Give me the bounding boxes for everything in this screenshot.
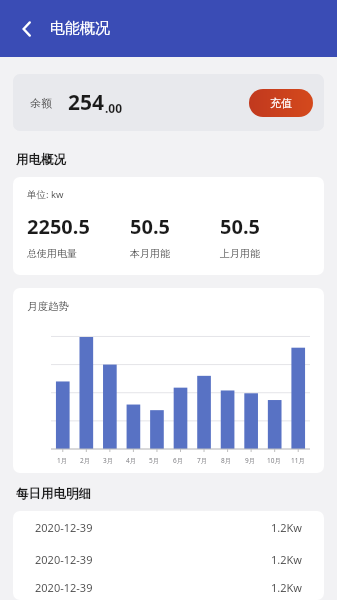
staticText: 11月 [291, 456, 305, 465]
staticText: 上月用能 [220, 247, 260, 260]
staticText: 2020-12-39 [35, 520, 93, 535]
staticText: 6月 [173, 456, 184, 465]
staticText: 充值 [270, 96, 292, 110]
staticText: 50.5 [130, 213, 170, 240]
staticText: 1.2Kw [271, 552, 302, 567]
button[interactable]: 充值 [249, 89, 313, 117]
staticText: 1.2Kw [271, 580, 302, 595]
staticText: 7月 [197, 456, 208, 465]
staticText: 3月 [103, 456, 114, 465]
button[interactable]: 2020-12-39 [13, 543, 324, 575]
staticText: 9月 [245, 456, 256, 465]
staticText: 用电概况 [16, 152, 66, 168]
button[interactable]: 2020-12-39 [13, 575, 324, 600]
staticText: 2250.5 [27, 213, 90, 240]
staticText: 2020-12-39 [35, 580, 93, 595]
staticText: 电能概况 [50, 19, 110, 38]
staticText: .00 [105, 100, 123, 116]
staticText: 2020-12-39 [35, 552, 93, 567]
staticText: 4月 [126, 456, 137, 465]
staticText: 总使用电量 [27, 247, 77, 260]
staticText: 1月 [57, 456, 68, 465]
staticText: 余额 [30, 96, 52, 110]
staticText: 本月用能 [130, 247, 170, 260]
staticText: 每日用电明细 [16, 486, 91, 502]
staticText: 2月 [80, 456, 91, 465]
staticText: 月度趋势 [27, 300, 69, 313]
staticText: 10月 [267, 456, 281, 465]
staticText: 254 [68, 88, 105, 117]
button[interactable]: 2020-12-39 [13, 511, 324, 543]
staticText: 1.2Kw [271, 520, 302, 535]
button[interactable]: Back [6, 8, 48, 50]
staticText: 8月 [221, 456, 232, 465]
staticText: 50.5 [220, 213, 260, 240]
staticText: 5月 [149, 456, 160, 465]
staticText: 单位: kw [27, 188, 64, 201]
